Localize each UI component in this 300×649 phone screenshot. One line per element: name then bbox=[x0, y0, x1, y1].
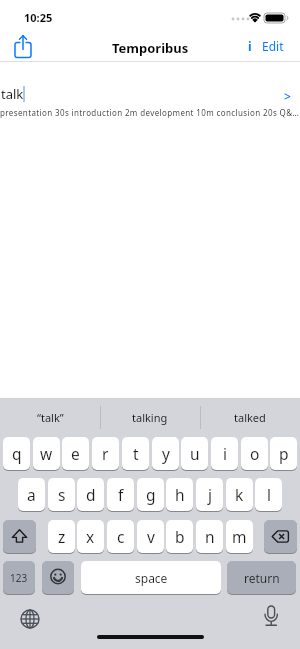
button[interactable]: k bbox=[226, 478, 253, 511]
button[interactable]: z bbox=[48, 520, 75, 553]
button[interactable]: talking bbox=[100, 398, 200, 437]
button[interactable]: l bbox=[255, 478, 282, 511]
staticText: y bbox=[162, 443, 170, 464]
button[interactable]: f bbox=[107, 478, 134, 511]
button[interactable]: s bbox=[48, 478, 75, 511]
staticText: d bbox=[86, 484, 96, 505]
staticText: talked bbox=[234, 410, 266, 425]
staticText: h bbox=[175, 484, 185, 505]
staticText: a bbox=[27, 484, 36, 505]
staticText: g bbox=[146, 484, 156, 505]
button[interactable] bbox=[264, 520, 297, 553]
staticText: presentation 30s introduction 2m develop… bbox=[0, 107, 300, 118]
button[interactable] bbox=[10, 32, 40, 62]
staticText: c bbox=[117, 526, 125, 547]
staticText: e bbox=[71, 443, 80, 464]
button[interactable]: p bbox=[270, 437, 297, 470]
button[interactable] bbox=[42, 561, 74, 594]
button[interactable]: r bbox=[92, 437, 119, 470]
staticText: w bbox=[40, 443, 53, 464]
staticText: k bbox=[235, 484, 244, 505]
staticText: i bbox=[248, 38, 252, 54]
button[interactable]: j bbox=[196, 478, 223, 511]
button[interactable]: y bbox=[152, 437, 179, 470]
staticText: r bbox=[102, 443, 109, 464]
staticText: j bbox=[208, 484, 212, 505]
button[interactable]: c bbox=[107, 520, 134, 553]
staticText: “talk” bbox=[37, 410, 64, 425]
button[interactable]: talked bbox=[200, 398, 300, 437]
button[interactable]: t bbox=[122, 437, 149, 470]
staticText: v bbox=[147, 526, 155, 547]
button[interactable]: e bbox=[62, 437, 89, 470]
staticText: l bbox=[267, 484, 271, 505]
staticText: s bbox=[58, 484, 66, 505]
button[interactable]: d bbox=[77, 478, 104, 511]
staticText: o bbox=[250, 443, 260, 464]
staticText: talking bbox=[132, 410, 168, 425]
staticText: i bbox=[223, 443, 227, 464]
button[interactable]: v bbox=[137, 520, 164, 553]
staticText: m bbox=[232, 526, 247, 547]
button[interactable]: return bbox=[227, 561, 296, 594]
button[interactable]: a bbox=[18, 478, 45, 511]
staticText: n bbox=[205, 526, 215, 547]
button[interactable]: g bbox=[137, 478, 164, 511]
staticText: f bbox=[118, 484, 124, 505]
button[interactable]: b bbox=[166, 520, 193, 553]
button[interactable]: h bbox=[166, 478, 193, 511]
staticText: q bbox=[12, 443, 22, 464]
button[interactable]: o bbox=[241, 437, 268, 470]
staticText: Temporibus bbox=[112, 39, 189, 57]
button[interactable]: n bbox=[196, 520, 223, 553]
staticText: space bbox=[135, 570, 168, 586]
staticText: p bbox=[279, 443, 289, 464]
button[interactable]: m bbox=[226, 520, 253, 553]
button[interactable]: x bbox=[77, 520, 104, 553]
staticText: 10:25 bbox=[24, 10, 53, 25]
staticText: u bbox=[190, 443, 200, 464]
button[interactable]: 123 bbox=[3, 561, 35, 594]
button[interactable]: space bbox=[81, 561, 221, 594]
staticText: > bbox=[284, 88, 291, 104]
button[interactable]: q bbox=[3, 437, 30, 470]
staticText: b bbox=[175, 526, 185, 547]
button[interactable] bbox=[3, 520, 36, 553]
staticText: 123 bbox=[10, 571, 28, 585]
staticText: x bbox=[86, 526, 95, 547]
staticText: z bbox=[58, 526, 66, 547]
button[interactable]: w bbox=[33, 437, 60, 470]
staticText: return bbox=[244, 570, 280, 586]
button[interactable]: i bbox=[248, 38, 284, 54]
button[interactable]: i bbox=[211, 437, 238, 470]
staticText: Edit bbox=[262, 38, 284, 54]
button[interactable]: u bbox=[181, 437, 208, 470]
staticText: t bbox=[133, 443, 139, 464]
staticText: talk bbox=[1, 85, 24, 103]
button[interactable]: “talk” bbox=[0, 398, 100, 437]
